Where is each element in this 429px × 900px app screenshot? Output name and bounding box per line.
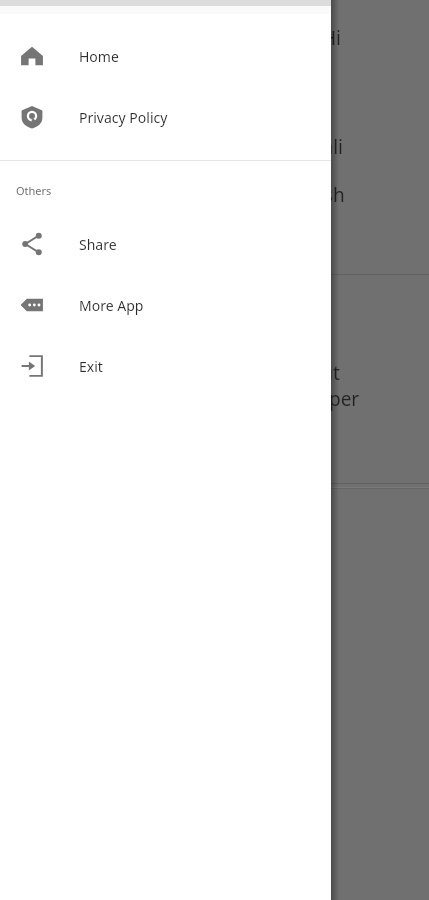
- staticText: More App: [79, 296, 144, 315]
- staticText: English: [280, 182, 345, 208]
- staticText: Bengali: [276, 134, 343, 160]
- button[interactable]: Privacy Policy: [0, 93, 331, 141]
- button[interactable]: More App: [0, 281, 331, 329]
- staticText: Share: [79, 235, 117, 254]
- staticText: Exit: [79, 357, 103, 376]
- staticText: Others: [16, 183, 52, 198]
- button[interactable]: Home: [0, 32, 331, 80]
- button[interactable]: Exit: [0, 342, 331, 390]
- button[interactable]: Share: [0, 220, 331, 268]
- staticText: About: [286, 360, 340, 386]
- staticText: Privacy Policy: [79, 108, 168, 127]
- staticText: Home: [79, 47, 119, 66]
- staticText: Hi: [322, 25, 341, 51]
- staticText: Developer: [268, 386, 360, 412]
